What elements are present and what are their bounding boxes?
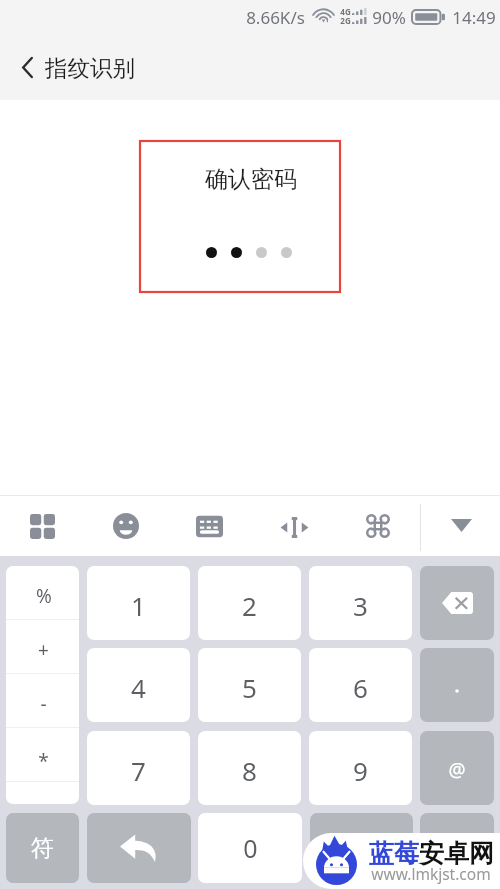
staticText: 4G <box>340 6 351 17</box>
staticText: 4 <box>131 670 146 705</box>
button[interactable]: Apps <box>12 496 72 556</box>
staticText: 2 <box>242 588 257 623</box>
button[interactable]: 9 <box>309 731 412 805</box>
button[interactable]: At sign <box>420 731 494 805</box>
staticText: - <box>40 691 47 717</box>
staticText: 2G <box>340 15 351 26</box>
staticText: 3 <box>353 588 368 623</box>
button[interactable]: Enter <box>420 813 494 883</box>
button[interactable]: Hide keyboard <box>430 495 492 556</box>
staticText: 1 <box>131 588 146 623</box>
button[interactable]: 7 <box>87 731 190 805</box>
button[interactable]: 0 <box>198 813 302 883</box>
button[interactable]: Back <box>2 34 52 100</box>
staticText: 7 <box>131 753 146 788</box>
button[interactable]: Input settings <box>348 496 408 556</box>
button[interactable]: Emoji <box>96 496 156 556</box>
button[interactable]: Backspace <box>420 566 494 640</box>
staticText: 安卓网 <box>419 838 494 869</box>
button[interactable]: + <box>6 620 79 673</box>
staticText: * <box>38 748 49 774</box>
staticText: 指纹识别 <box>45 54 135 82</box>
staticText: 6 <box>353 670 368 705</box>
staticText: 14:49 <box>452 6 496 29</box>
button[interactable]: % <box>6 566 79 619</box>
button[interactable]: - <box>6 674 79 727</box>
button[interactable]: 4 <box>87 648 190 722</box>
staticText: 9 <box>353 753 368 788</box>
button[interactable]: 6 <box>309 648 412 722</box>
staticText: 8.66K/s <box>246 6 305 29</box>
button[interactable]: * <box>6 728 79 781</box>
staticText: + <box>38 637 49 663</box>
button[interactable]: Keyboard <box>179 496 239 556</box>
button[interactable]: Return <box>87 813 191 883</box>
button[interactable]: 2 <box>198 566 301 640</box>
staticText: 8 <box>242 753 257 788</box>
button[interactable]: 3 <box>309 566 412 640</box>
button[interactable]: 5 <box>198 648 301 722</box>
staticText: @ <box>448 757 466 783</box>
staticText: www.lmkjst.com <box>371 863 491 884</box>
button[interactable]: Symbols <box>6 813 79 883</box>
button[interactable]: 8 <box>198 731 301 805</box>
staticText: 90% <box>372 6 406 29</box>
staticText: 符 <box>31 834 54 863</box>
button[interactable]: 1 <box>87 566 190 640</box>
staticText: % <box>36 583 52 609</box>
staticText: 蓝莓 <box>369 838 419 869</box>
button[interactable]: Move cursor <box>264 497 324 557</box>
staticText: 5 <box>242 670 257 705</box>
button[interactable]: Period <box>420 648 494 722</box>
button[interactable]: Space <box>310 813 413 883</box>
staticText: 0 <box>243 831 258 865</box>
staticText: 确认密码 <box>205 165 297 194</box>
